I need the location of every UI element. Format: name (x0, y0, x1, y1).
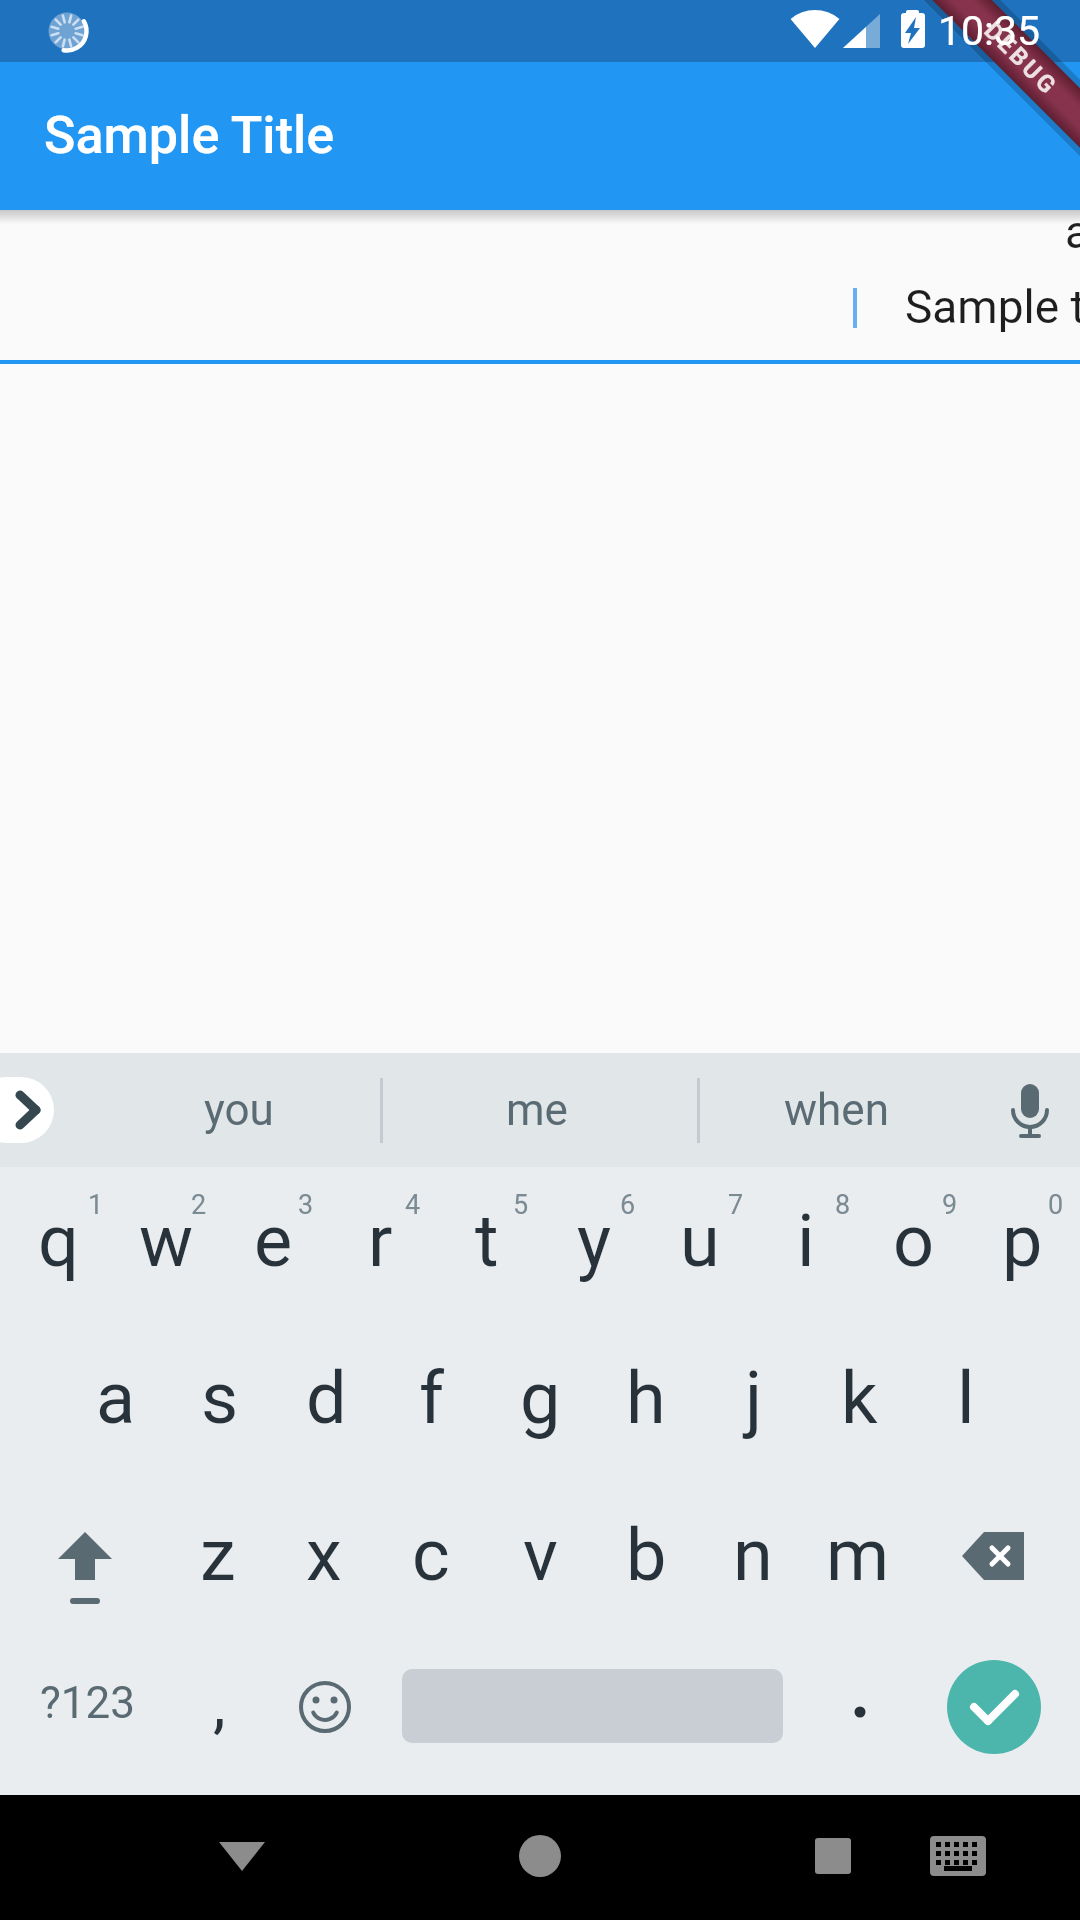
staticText: DEBUG (979, 17, 1063, 101)
button[interactable] (25, 1501, 145, 1618)
staticText: me (506, 1084, 568, 1136)
button[interactable]: i (754, 1162, 858, 1319)
button[interactable] (783, 1806, 883, 1906)
button[interactable]: h (594, 1319, 698, 1476)
staticText: 7 (728, 1189, 744, 1221)
button[interactable]: u (648, 1162, 752, 1319)
button[interactable]: l (914, 1319, 1018, 1476)
staticText: 2 (191, 1189, 207, 1221)
staticText: u (680, 1199, 720, 1283)
staticText: j (745, 1356, 763, 1440)
button[interactable] (192, 1806, 292, 1906)
staticText: ?123 (40, 1677, 135, 1729)
button[interactable]: v (488, 1476, 592, 1633)
staticText: , (213, 1667, 226, 1742)
button[interactable]: Sample text (905, 280, 1080, 334)
staticText: i (797, 1199, 815, 1283)
button[interactable]: p (970, 1162, 1074, 1319)
staticText: k (841, 1356, 878, 1440)
button[interactable]: w (114, 1162, 218, 1319)
button[interactable]: , (179, 1626, 259, 1783)
button[interactable]: t (435, 1162, 539, 1319)
staticText: a (96, 1356, 136, 1440)
staticText: x (306, 1513, 342, 1597)
button[interactable]: o (862, 1162, 966, 1319)
staticText: z (200, 1513, 236, 1597)
button[interactable]: q (6, 1162, 110, 1319)
staticText: q (38, 1199, 79, 1283)
staticText: d (306, 1356, 347, 1440)
staticText: Sample text (905, 280, 1080, 334)
button[interactable] (990, 1070, 1070, 1150)
staticText: Sample Title (44, 105, 335, 166)
button[interactable]: j (702, 1319, 806, 1476)
staticText: y (577, 1199, 612, 1283)
button[interactable]: a (64, 1319, 168, 1476)
staticText: b (626, 1513, 667, 1597)
staticText: c (412, 1513, 450, 1597)
button[interactable]: s (168, 1319, 272, 1476)
button[interactable]: me (387, 1053, 687, 1167)
staticText: 3 (298, 1189, 314, 1221)
button[interactable] (820, 1676, 900, 1756)
button[interactable]: y (542, 1162, 646, 1319)
staticText: s (201, 1356, 239, 1440)
staticText: p (1002, 1199, 1043, 1283)
button[interactable] (936, 1501, 1056, 1618)
staticText: n (733, 1513, 773, 1597)
staticText: 8 (835, 1189, 851, 1221)
button[interactable]: when (706, 1053, 966, 1167)
button[interactable] (947, 1660, 1041, 1754)
button[interactable]: b (594, 1476, 698, 1633)
staticText: r (368, 1199, 393, 1283)
button[interactable]: n (701, 1476, 805, 1633)
staticText: t (475, 1199, 499, 1283)
button[interactable]: c (379, 1476, 483, 1633)
staticText: 1 (88, 1189, 104, 1221)
staticText: g (520, 1356, 561, 1440)
staticText: w (139, 1199, 194, 1283)
button[interactable]: x (272, 1476, 376, 1633)
staticText: 4 (405, 1189, 421, 1221)
staticText: 9 (942, 1189, 958, 1221)
button[interactable]: r (328, 1162, 432, 1319)
staticText: h (626, 1356, 666, 1440)
button[interactable] (280, 1662, 370, 1752)
button[interactable]: you (89, 1053, 389, 1167)
button[interactable]: ?123 (12, 1624, 162, 1781)
button[interactable] (490, 1806, 590, 1906)
button[interactable]: d (274, 1319, 378, 1476)
button[interactable]: f (380, 1319, 484, 1476)
staticText: when (784, 1084, 889, 1136)
staticText: v (523, 1513, 558, 1597)
staticText: e (254, 1199, 293, 1283)
staticText: 5 (513, 1189, 529, 1221)
button[interactable]: z (166, 1476, 270, 1633)
staticText: m (826, 1513, 890, 1597)
staticText: 0 (1048, 1189, 1064, 1221)
button[interactable]: k (807, 1319, 911, 1476)
staticText: 6 (620, 1189, 636, 1221)
staticText: a (1065, 205, 1080, 259)
staticText: you (204, 1084, 274, 1136)
staticText: 10:35 (938, 7, 1041, 55)
staticText: f (419, 1356, 445, 1440)
staticText: o (893, 1199, 935, 1283)
button[interactable] (908, 1806, 1008, 1906)
button[interactable] (0, 1077, 54, 1143)
button[interactable]: m (806, 1476, 910, 1633)
button[interactable]: e (221, 1162, 325, 1319)
staticText: l (957, 1356, 975, 1440)
button[interactable]: g (488, 1319, 592, 1476)
